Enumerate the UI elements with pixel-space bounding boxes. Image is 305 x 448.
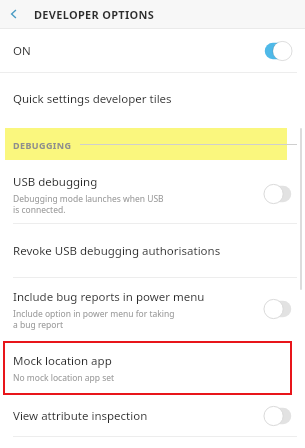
staticText: ON <box>13 43 31 59</box>
staticText: Mock location app <box>13 353 112 369</box>
button[interactable]: ON <box>0 29 305 72</box>
staticText: Revoke USB debugging authorisations <box>13 243 221 259</box>
staticText: View attribute inspection <box>13 408 148 424</box>
button[interactable]: Back <box>0 0 28 28</box>
staticText: Debugging mode launches when USB is conn… <box>13 193 164 215</box>
button[interactable]: Include bug reports in power menu <box>0 278 305 340</box>
button[interactable]: USB debugging <box>0 165 305 223</box>
staticText: No mock location app set <box>13 372 115 384</box>
button[interactable]: Revoke USB debugging authorisations <box>0 224 305 277</box>
staticText: DEBUGGING <box>13 139 72 151</box>
staticText: DEVELOPER OPTIONS <box>34 7 155 22</box>
staticText: Quick settings developer tiles <box>13 91 172 107</box>
button[interactable]: Quick settings developer tiles <box>0 73 305 124</box>
button[interactable]: Mock location app <box>3 341 292 395</box>
staticText: USB debugging <box>13 174 98 190</box>
button[interactable]: View attribute inspection <box>0 396 305 436</box>
staticText: Include bug reports in power menu <box>13 289 205 305</box>
staticText: Include option in power menu for taking … <box>13 308 175 330</box>
